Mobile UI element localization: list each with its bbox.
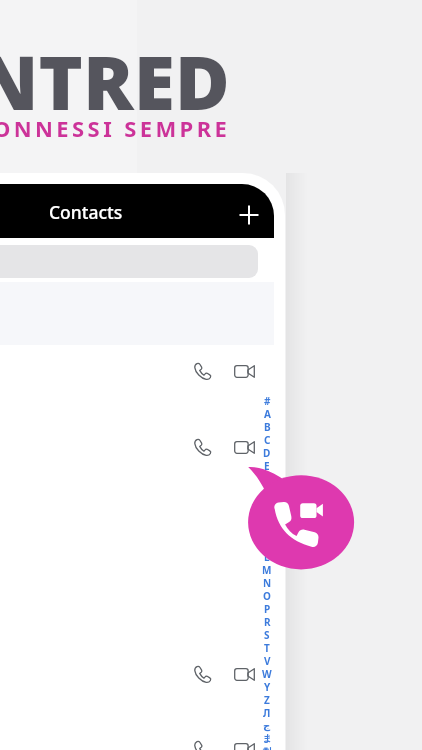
staticText: P bbox=[264, 602, 271, 615]
staticText: O bbox=[263, 589, 271, 602]
button[interactable] bbox=[0, 485, 274, 561]
button[interactable]: Contacts bbox=[0, 184, 274, 238]
staticText: L bbox=[264, 550, 270, 563]
staticText: ONNESSI SEMPRE bbox=[0, 113, 231, 143]
staticText: ま bbox=[262, 732, 273, 745]
staticText: # bbox=[264, 394, 271, 407]
staticText: W bbox=[262, 667, 272, 680]
button[interactable]: Add contact bbox=[230, 196, 268, 234]
staticText: Л bbox=[263, 706, 271, 719]
staticText: G bbox=[263, 485, 271, 498]
staticText: R bbox=[264, 615, 271, 628]
staticText: Z bbox=[264, 693, 270, 706]
staticText: V bbox=[264, 654, 271, 667]
button[interactable]: New call bbox=[244, 462, 358, 575]
button[interactable] bbox=[0, 334, 274, 410]
staticText: B bbox=[264, 420, 271, 433]
staticText: ج bbox=[263, 720, 271, 732]
staticText: C bbox=[264, 433, 271, 446]
staticText: E bbox=[264, 459, 270, 472]
staticText: Y bbox=[264, 680, 271, 693]
button[interactable] bbox=[0, 712, 274, 750]
button[interactable] bbox=[0, 561, 274, 637]
button[interactable]: Alphabet index bbox=[259, 394, 274, 750]
button[interactable] bbox=[0, 637, 274, 713]
staticText: T bbox=[264, 641, 270, 654]
staticText: D bbox=[263, 446, 271, 459]
button[interactable] bbox=[0, 410, 274, 486]
staticText: Contacts bbox=[49, 200, 123, 224]
staticText: S bbox=[264, 628, 270, 641]
staticText: M bbox=[262, 563, 272, 576]
staticText: NTRED bbox=[0, 30, 230, 132]
staticText: 한 bbox=[262, 745, 272, 750]
staticText: N bbox=[263, 576, 272, 589]
staticText: A bbox=[264, 407, 271, 420]
